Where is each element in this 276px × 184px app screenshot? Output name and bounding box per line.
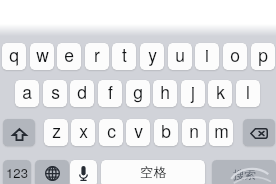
button[interactable]: Backspace	[243, 119, 275, 146]
staticText: k	[216, 80, 225, 104]
staticText: b	[161, 119, 171, 143]
button[interactable]: y	[140, 43, 164, 70]
button[interactable]: h	[153, 80, 177, 107]
button[interactable]: n	[182, 119, 206, 146]
staticText: t	[122, 43, 127, 67]
staticText: w	[36, 43, 49, 67]
button[interactable]: 搜索	[212, 160, 276, 184]
staticText: h	[160, 80, 170, 104]
staticText: c	[107, 119, 116, 143]
button[interactable]: z	[44, 119, 68, 146]
button[interactable]: a	[15, 80, 39, 107]
staticText: 123	[6, 163, 28, 182]
staticText: 空格	[140, 164, 167, 181]
staticText: r	[94, 43, 100, 67]
button[interactable]: Switch keyboard	[35, 160, 69, 184]
staticText: y	[148, 43, 157, 67]
button[interactable]: g	[126, 80, 150, 107]
button[interactable]: x	[71, 119, 95, 146]
button[interactable]: v	[126, 119, 150, 146]
staticText: o	[230, 43, 240, 67]
button[interactable]: w	[30, 43, 54, 70]
button[interactable]: l	[236, 80, 260, 107]
button[interactable]: c	[99, 119, 123, 146]
button[interactable]: f	[98, 80, 122, 107]
staticText: 搜索	[233, 168, 256, 182]
staticText: l	[246, 80, 250, 104]
button[interactable]: Shift	[3, 119, 35, 146]
staticText: z	[52, 119, 61, 143]
staticText: f	[108, 80, 113, 104]
button[interactable]: o	[223, 43, 247, 70]
staticText: v	[134, 119, 143, 143]
button[interactable]: k	[208, 80, 232, 107]
staticText: a	[22, 80, 32, 104]
staticText: j	[191, 80, 195, 104]
staticText: e	[64, 43, 74, 67]
button[interactable]: i	[195, 43, 219, 70]
staticText: n	[189, 119, 199, 143]
staticText: i	[205, 43, 209, 67]
staticText: x	[79, 119, 88, 143]
staticText: g	[133, 80, 143, 104]
button[interactable]: d	[70, 80, 94, 107]
staticText: q	[9, 43, 19, 67]
button[interactable]: r	[85, 43, 109, 70]
staticText: s	[51, 80, 60, 104]
button[interactable]: b	[154, 119, 178, 146]
button[interactable]: q	[2, 43, 26, 70]
button[interactable]: 空格	[101, 160, 205, 184]
button[interactable]: u	[168, 43, 192, 70]
staticText: p	[258, 43, 268, 67]
button[interactable]: j	[181, 80, 205, 107]
button[interactable]: t	[112, 43, 136, 70]
button[interactable]: Voice input	[70, 160, 97, 184]
button[interactable]: e	[57, 43, 81, 70]
staticText: u	[175, 43, 185, 67]
button[interactable]: m	[209, 119, 233, 146]
staticText: d	[77, 80, 87, 104]
staticText: m	[214, 119, 229, 143]
button[interactable]: 123	[3, 160, 31, 184]
button[interactable]: s	[43, 80, 67, 107]
button[interactable]: p	[251, 43, 275, 70]
